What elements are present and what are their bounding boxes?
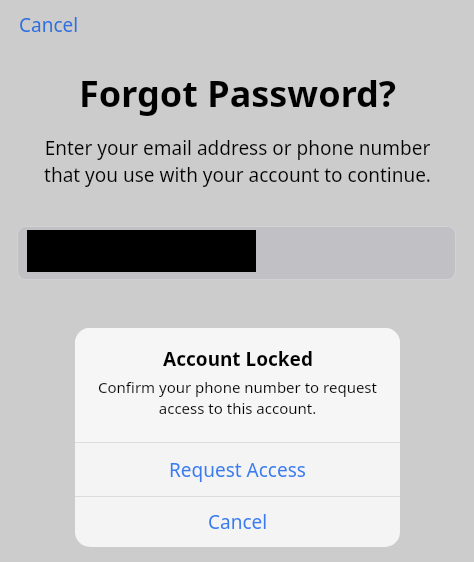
staticText: Account Locked [163,346,313,372]
staticText: Cancel [208,509,268,535]
staticText: Forgot Password? [79,69,396,118]
staticText: Confirm your phone number to request acc… [98,377,377,419]
button[interactable]: Cancel [75,497,400,547]
staticText: Enter your email address or phone number… [44,135,431,188]
staticText: Request Access [169,457,306,483]
staticText: Cancel [19,12,79,38]
button[interactable]: Request Access [75,443,400,496]
button[interactable]: Cancel [12,9,86,41]
button[interactable] [17,226,456,280]
